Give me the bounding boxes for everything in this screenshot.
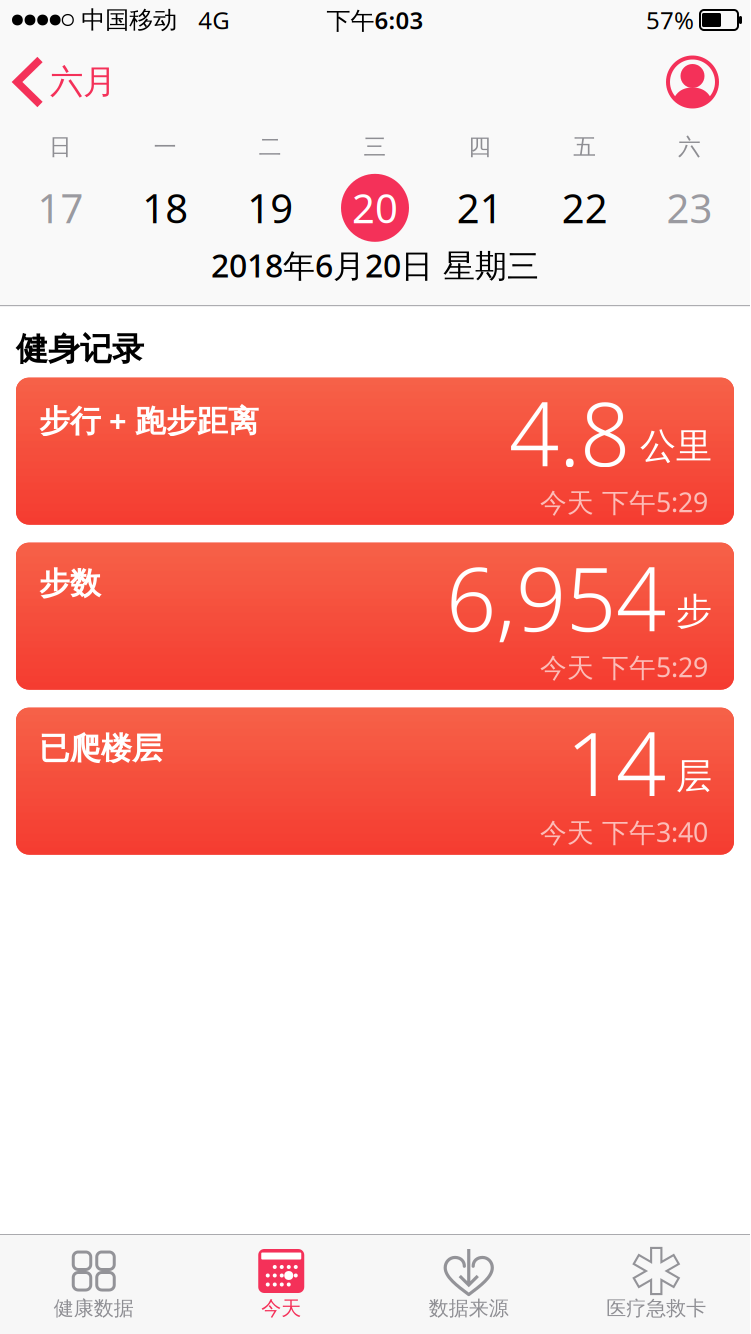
staticText: 步 [676, 589, 712, 633]
staticText: 今天 下午3:40 [540, 814, 708, 850]
button[interactable]: 已爬楼层 [16, 708, 734, 855]
staticText: 22 [562, 181, 608, 234]
button[interactable]: 23 [637, 174, 742, 242]
staticText: 19 [247, 181, 293, 234]
staticText: 一 [154, 133, 177, 161]
staticText: 2018年6月20日 星期三 [211, 244, 539, 286]
button[interactable]: 医疗急救卡 [562, 1235, 750, 1334]
button[interactable]: 18 [113, 174, 218, 242]
button[interactable]: 19 [218, 174, 323, 242]
staticText: 健身记录 [16, 329, 144, 369]
staticText: 四 [468, 133, 491, 161]
staticText: 公里 [640, 424, 712, 468]
staticText: 已爬楼层 [39, 730, 163, 767]
staticText: 今天 下午5:29 [540, 484, 708, 520]
staticText: 18 [142, 181, 188, 234]
staticText: 23 [667, 181, 713, 234]
button[interactable]: 步数 [16, 543, 734, 690]
button[interactable]: 今天 [187, 1235, 375, 1334]
button[interactable]: 20 [323, 174, 427, 242]
staticText: 医疗急救卡 [606, 1296, 706, 1321]
staticText: 健康数据 [54, 1296, 134, 1321]
button[interactable]: 21 [427, 174, 532, 242]
staticText: 二 [259, 133, 282, 161]
staticText: 层 [676, 754, 712, 798]
staticText: 日 [49, 133, 72, 161]
staticText: 4.8 [509, 374, 630, 490]
button[interactable]: 22 [532, 174, 637, 242]
button[interactable]: 17 [8, 174, 113, 242]
staticText: 数据来源 [429, 1296, 509, 1321]
staticText: 步数 [39, 565, 101, 602]
staticText: 六月 [50, 61, 116, 102]
button[interactable]: 数据来源 [375, 1235, 562, 1334]
staticText: 21 [457, 181, 503, 234]
staticText: 步行 + 跑步距离 [39, 400, 259, 440]
staticText: 6,954 [446, 539, 666, 655]
staticText: 三 [363, 133, 386, 161]
staticText: 57% [646, 4, 694, 36]
staticText: 14 [566, 704, 666, 820]
button[interactable]: 健康数据 [0, 1235, 187, 1334]
staticText: 17 [37, 181, 83, 234]
staticText: 今天 下午5:29 [540, 649, 708, 685]
button[interactable]: 六月 [0, 59, 116, 104]
button[interactable]: 步行 + 跑步距离 [16, 378, 734, 525]
button[interactable]: 个人资料 [668, 57, 750, 106]
staticText: 4G [198, 4, 229, 36]
staticText: 六 [678, 133, 701, 161]
staticText: 下午6:03 [326, 4, 423, 36]
staticText: 五 [573, 133, 596, 161]
staticText: 20 [352, 181, 398, 234]
staticText: 中国移动 [81, 5, 177, 35]
staticText: 今天 [261, 1296, 301, 1321]
